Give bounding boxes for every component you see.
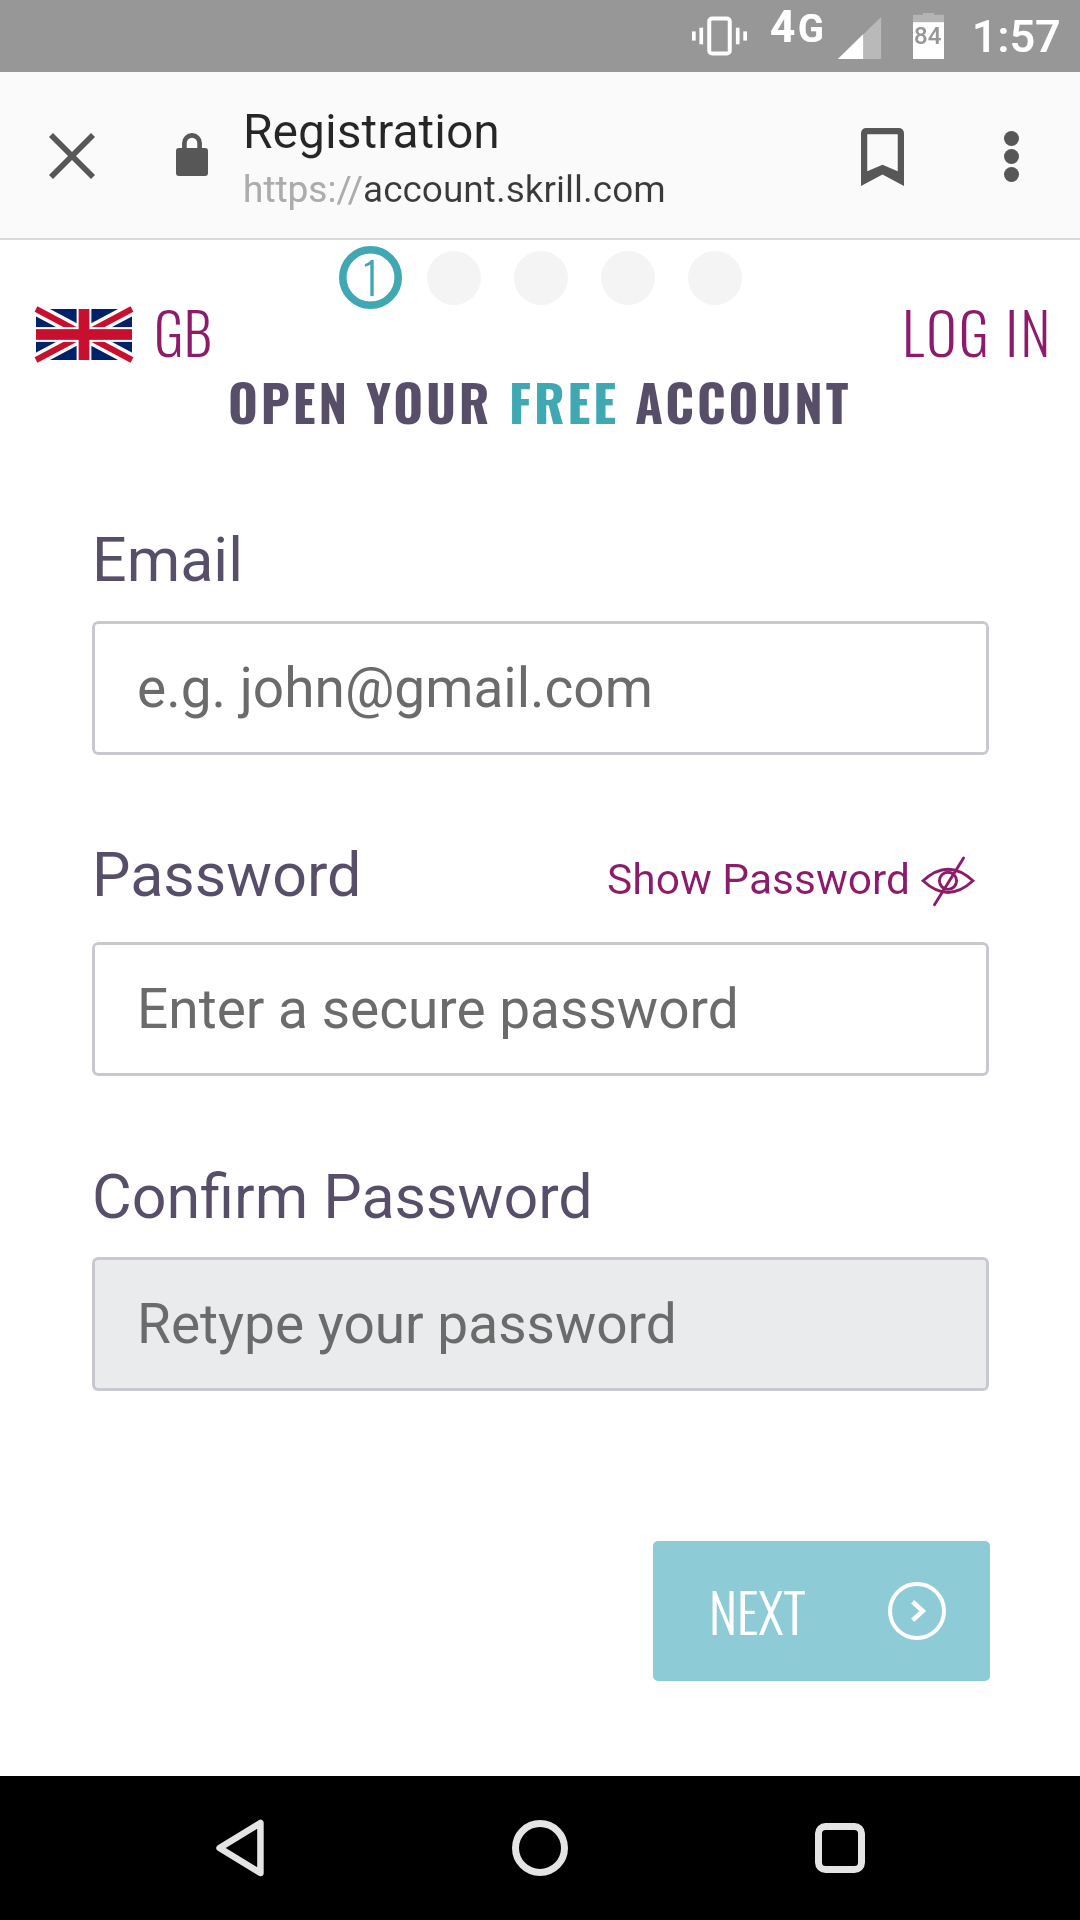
staticText: e.g. john@gmail.com — [137, 656, 653, 720]
staticText: 1 — [363, 244, 379, 307]
staticText: Enter a secure password — [137, 977, 739, 1041]
staticText: ACCOUNT — [635, 363, 852, 439]
button[interactable]: Enter a secure password — [92, 942, 989, 1076]
button[interactable]: LOG IN — [890, 284, 1065, 378]
button[interactable]: Home — [475, 1783, 605, 1913]
staticText: OPEN YOUR — [228, 363, 509, 439]
staticText: Retype your password — [137, 1292, 677, 1356]
staticText: Password — [92, 839, 362, 910]
button[interactable]: Back — [175, 1783, 305, 1913]
button[interactable]: Retype your password — [92, 1257, 989, 1391]
staticText: NEXT — [709, 1571, 806, 1651]
button[interactable]: Recents — [775, 1783, 905, 1913]
button[interactable]: Bookmark — [834, 109, 930, 205]
staticText: Confirm Password — [92, 1161, 593, 1232]
button[interactable]: e.g. john@gmail.com — [92, 621, 989, 755]
staticText: G — [798, 7, 824, 52]
staticText: account.skrill.com — [363, 168, 666, 211]
staticText: 4 — [770, 1, 796, 53]
staticText: Show Password — [607, 855, 911, 905]
button[interactable]: Close — [24, 108, 120, 204]
staticText: 84 — [914, 22, 942, 50]
button[interactable]: More options — [963, 108, 1059, 204]
staticText: 1:57 — [972, 10, 1061, 63]
staticText: FREE — [509, 363, 635, 439]
staticText: Email — [92, 524, 244, 595]
staticText: GB — [154, 289, 213, 373]
button[interactable]: NEXT — [653, 1541, 990, 1681]
button[interactable]: Show Password — [607, 855, 974, 905]
staticText: Registration — [243, 103, 500, 159]
staticText: LOG IN — [902, 288, 1053, 374]
staticText: https:// — [243, 168, 363, 211]
